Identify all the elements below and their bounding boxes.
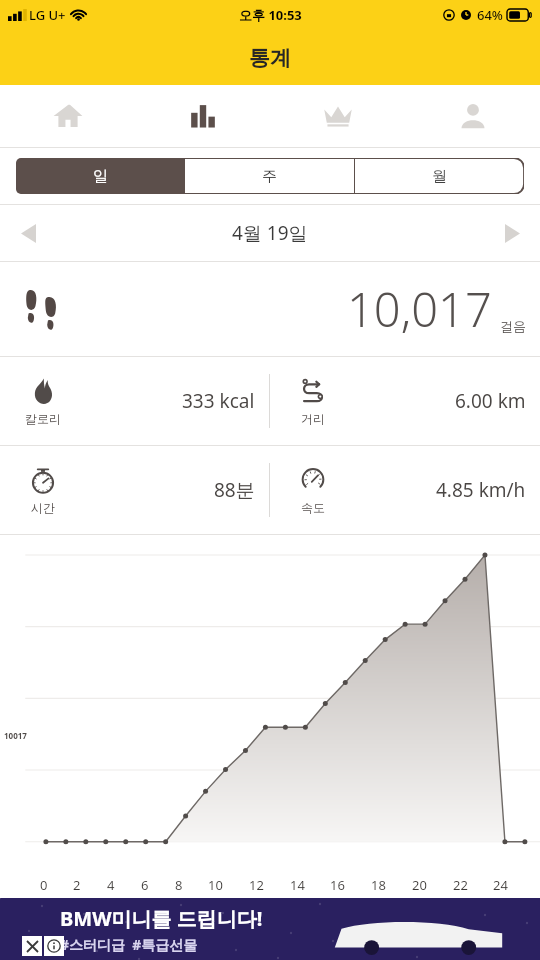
staticText: 4 <box>107 876 115 894</box>
button[interactable]: Statistics <box>135 85 270 147</box>
staticText: 8 <box>175 876 183 894</box>
button[interactable]: Ranking <box>270 85 405 147</box>
staticText: 거리 <box>301 411 325 426</box>
staticText: 주 <box>262 167 277 186</box>
button[interactable]: 일 <box>16 158 184 194</box>
staticText: 4월 19일 <box>232 220 308 246</box>
button[interactable]: 속도 <box>270 446 540 534</box>
staticText: 10017 <box>4 730 27 741</box>
staticText: 2 <box>73 876 81 894</box>
staticText: 걸음 <box>500 318 526 334</box>
button[interactable]: 주 <box>185 158 354 194</box>
staticText: 64% <box>477 6 503 24</box>
staticText: 24 <box>493 876 508 894</box>
staticText: 통계 <box>249 45 291 71</box>
staticText: 일 <box>93 167 108 186</box>
button[interactable]: 거리 <box>270 357 540 445</box>
button[interactable]: Profile <box>405 85 540 147</box>
staticText: 6.00 km <box>455 388 526 414</box>
staticText: 18 <box>371 876 386 894</box>
staticText: 4.85 km/h <box>436 477 526 503</box>
staticText: 칼로리 <box>25 411 61 426</box>
button[interactable]: 시간 <box>0 446 269 534</box>
staticText: LG U+ <box>29 6 66 24</box>
button[interactable]: Next day <box>484 205 540 261</box>
button[interactable]: Previous day <box>0 205 56 261</box>
button[interactable]: Ad info <box>44 936 64 956</box>
staticText: 88분 <box>214 477 255 503</box>
staticText: 16 <box>330 876 345 894</box>
staticText: 12 <box>249 876 264 894</box>
button[interactable]: 10,017 <box>0 262 540 356</box>
button[interactable]: Home <box>0 85 135 147</box>
button[interactable]: 칼로리 <box>0 357 269 445</box>
staticText: 14 <box>290 876 305 894</box>
staticText: 6 <box>141 876 149 894</box>
staticText: 오후 10:53 <box>239 6 302 24</box>
staticText: BMW미니를 드립니다! <box>60 905 263 932</box>
staticText: 20 <box>412 876 427 894</box>
staticText: 333 kcal <box>182 388 255 414</box>
staticText: 속도 <box>301 500 325 515</box>
button[interactable]: BMW미니를 드립니다! <box>0 898 540 960</box>
button[interactable]: 월 <box>355 158 524 194</box>
staticText: 월 <box>432 167 447 186</box>
staticText: #스터디급 #특급선물 <box>60 935 198 954</box>
staticText: 시간 <box>31 500 55 515</box>
staticText: 10,017 <box>347 277 492 341</box>
staticText: 22 <box>453 876 468 894</box>
button[interactable]: Close ad <box>22 936 42 956</box>
staticText: 0 <box>40 876 48 894</box>
staticText: 10 <box>208 876 223 894</box>
